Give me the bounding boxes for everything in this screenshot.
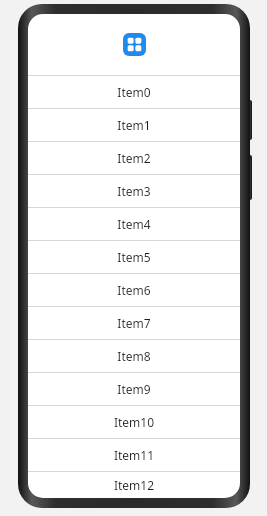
- button[interactable]: Item0: [28, 75, 240, 108]
- button[interactable]: Item3: [28, 174, 240, 207]
- staticText: Item4: [28, 216, 240, 232]
- staticText: Item0: [28, 84, 240, 100]
- staticText: Item5: [28, 249, 240, 265]
- button[interactable]: Apps: [123, 33, 146, 56]
- button[interactable]: Item4: [28, 207, 240, 240]
- staticText: Item2: [28, 150, 240, 166]
- staticText: Item10: [28, 414, 240, 430]
- button[interactable]: Item5: [28, 240, 240, 273]
- staticText: Item8: [28, 348, 240, 364]
- button[interactable]: Item2: [28, 141, 240, 174]
- button[interactable]: Item11: [28, 438, 240, 471]
- staticText: Item12: [28, 477, 240, 493]
- staticText: Item11: [28, 447, 240, 463]
- button[interactable]: Item6: [28, 273, 240, 306]
- button[interactable]: Item8: [28, 339, 240, 372]
- staticText: Item1: [28, 117, 240, 133]
- staticText: Item7: [28, 315, 240, 331]
- button[interactable]: Item9: [28, 372, 240, 405]
- staticText: Item3: [28, 183, 240, 199]
- staticText: Item9: [28, 381, 240, 397]
- button[interactable]: Item7: [28, 306, 240, 339]
- button[interactable]: Item1: [28, 108, 240, 141]
- staticText: Item6: [28, 282, 240, 298]
- button[interactable]: Item12: [28, 471, 240, 498]
- button[interactable]: Item10: [28, 405, 240, 438]
